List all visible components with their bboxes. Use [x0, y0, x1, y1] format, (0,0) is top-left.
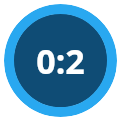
button[interactable]: Timer 0:2: [4, 4, 117, 117]
staticText: 0:2: [36, 38, 85, 84]
